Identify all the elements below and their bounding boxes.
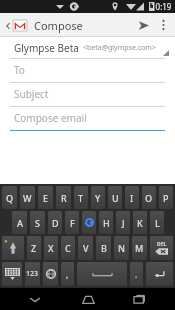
button[interactable]: 123 xyxy=(25,262,40,286)
staticText: To xyxy=(14,63,25,77)
staticText: <beta@glympse.com> xyxy=(83,43,156,53)
staticText: 10:19 xyxy=(151,1,172,12)
staticText: P xyxy=(163,192,169,204)
staticText: , xyxy=(66,269,69,280)
button[interactable]: Enter xyxy=(146,262,173,286)
staticText: I xyxy=(130,192,134,204)
button[interactable]: Delete xyxy=(150,236,173,260)
staticText: A xyxy=(17,217,23,229)
button[interactable]: Back xyxy=(17,288,53,310)
button[interactable]: V xyxy=(78,236,93,260)
staticText: Glympse Beta xyxy=(14,41,79,55)
staticText: R xyxy=(61,192,67,204)
button[interactable]: X xyxy=(44,236,58,260)
staticText: D xyxy=(52,217,59,229)
staticText: Compose email xyxy=(14,111,87,125)
button[interactable]: P xyxy=(159,186,173,209)
staticText: F xyxy=(70,217,75,229)
button[interactable]: Space xyxy=(77,262,127,286)
staticText: C xyxy=(65,242,71,254)
staticText: 123 xyxy=(26,269,39,279)
button[interactable]: D xyxy=(48,211,62,234)
button[interactable]: To xyxy=(0,59,175,83)
staticText: M xyxy=(135,242,144,254)
button[interactable]: C xyxy=(61,236,75,260)
button[interactable]: Home xyxy=(70,288,106,310)
staticText: DEL xyxy=(157,241,167,248)
button[interactable]: H xyxy=(99,211,113,234)
button[interactable]: N xyxy=(114,236,129,260)
staticText: Q xyxy=(6,192,14,204)
button[interactable]: Recent apps xyxy=(122,288,158,310)
staticText: N xyxy=(118,242,125,254)
staticText: H xyxy=(103,217,110,229)
button[interactable]: Z xyxy=(27,236,41,260)
button[interactable]: O xyxy=(142,186,156,209)
staticText: B xyxy=(101,242,107,254)
button[interactable]: I xyxy=(125,186,139,209)
button[interactable]: Change language xyxy=(43,262,58,286)
button[interactable]: Subject xyxy=(0,83,175,107)
button[interactable]: M xyxy=(132,236,147,260)
staticText: U xyxy=(112,192,119,204)
button[interactable]: F xyxy=(65,211,79,234)
button[interactable]: L xyxy=(150,211,164,234)
button[interactable]: S xyxy=(30,211,45,234)
button[interactable]: J xyxy=(116,211,130,234)
button[interactable]: Glympse Beta xyxy=(0,37,175,59)
staticText: Z xyxy=(31,242,37,254)
button[interactable]: K xyxy=(133,211,147,234)
button[interactable]: Q xyxy=(2,186,17,209)
staticText: E xyxy=(43,192,49,204)
staticText: . xyxy=(135,269,138,280)
staticText: S xyxy=(35,217,40,229)
staticText: L xyxy=(155,217,160,229)
staticText: V xyxy=(83,242,89,254)
button[interactable]: R xyxy=(56,186,71,209)
button[interactable]: Shift xyxy=(2,236,24,260)
staticText: K xyxy=(137,217,143,229)
button[interactable]: U xyxy=(108,186,122,209)
button[interactable]: Navigate up xyxy=(3,20,29,31)
button[interactable]: T xyxy=(74,186,88,209)
staticText: W xyxy=(23,192,32,204)
button[interactable]: Compose email xyxy=(0,107,175,131)
staticText: Y xyxy=(95,192,101,204)
staticText: T xyxy=(78,192,84,204)
staticText: J xyxy=(122,217,125,229)
staticText: X xyxy=(48,242,54,254)
button[interactable]: , xyxy=(61,262,74,286)
button[interactable]: Google search xyxy=(82,211,96,234)
staticText: O xyxy=(145,192,153,204)
staticText: Subject xyxy=(14,87,49,101)
button[interactable]: . xyxy=(130,262,143,286)
button[interactable]: Y xyxy=(91,186,105,209)
button[interactable]: More options xyxy=(155,13,171,37)
button[interactable]: Hide keyboard xyxy=(2,262,22,286)
button[interactable]: B xyxy=(96,236,111,260)
staticText: Compose xyxy=(34,18,83,33)
button[interactable]: A xyxy=(12,211,27,234)
button[interactable]: W xyxy=(20,186,35,209)
button[interactable]: E xyxy=(38,186,53,209)
button[interactable]: Send xyxy=(131,13,155,37)
